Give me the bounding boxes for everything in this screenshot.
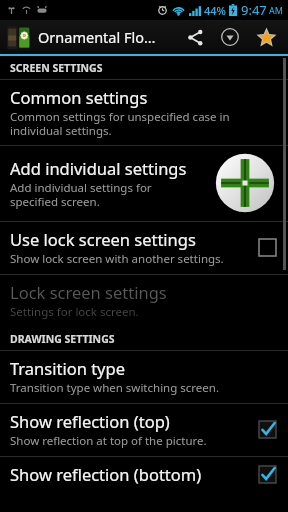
button[interactable]: More options — [212, 20, 248, 54]
staticText: Common settings — [10, 86, 148, 108]
button[interactable]: Transition type — [0, 351, 288, 403]
button[interactable]: Favorite — [248, 20, 284, 54]
staticText: Add individual settings — [10, 157, 187, 179]
button[interactable]: Use lock screen settings — [0, 222, 288, 274]
staticText: Add individual settings for specified sc… — [10, 180, 152, 209]
staticText: 9:47 — [241, 1, 267, 19]
button[interactable]: Common settings — [0, 80, 288, 145]
staticText: Show lock screen with another settings. — [10, 251, 224, 267]
staticText: Use lock screen settings — [10, 228, 196, 250]
button[interactable]: Show reflection (top) — [0, 404, 288, 456]
staticText: Show reflection (top) — [10, 410, 170, 432]
button[interactable]: Add individual settings — [0, 146, 288, 221]
staticText: Show reflection at top of the picture. — [10, 433, 207, 449]
staticText: SCREEN SETTINGS — [10, 61, 103, 75]
staticText: Transition type when switching screen. — [10, 380, 219, 396]
staticText: Ornamental Flo… — [38, 27, 156, 47]
staticText: 44% — [204, 3, 226, 18]
staticText: Common settings for unspecified case in … — [10, 109, 230, 138]
button[interactable]: Share — [178, 20, 212, 54]
staticText: DRAWING SETTINGS — [10, 332, 115, 346]
staticText: Show reflection (bottom) — [10, 463, 202, 485]
staticText: AM — [269, 4, 283, 16]
staticText: Settings for lock screen. — [10, 304, 139, 320]
staticText: Transition type — [10, 357, 125, 379]
staticText: Lock screen settings — [10, 281, 167, 303]
button[interactable]: Show reflection (bottom) — [0, 457, 288, 492]
